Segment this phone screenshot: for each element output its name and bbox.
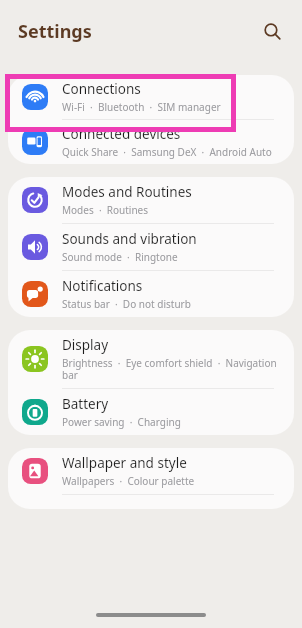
button[interactable]: Battery <box>8 389 294 435</box>
button[interactable]: Search <box>256 15 288 47</box>
staticText: Modes · Routines <box>62 203 149 217</box>
button[interactable]: Sounds and vibration <box>8 224 294 270</box>
staticText: Settings <box>18 19 92 44</box>
staticText: Display <box>62 336 109 354</box>
button[interactable]: Modes and Routines <box>8 177 294 223</box>
button[interactable]: Display <box>8 330 294 388</box>
staticText: Connected devices <box>62 125 181 143</box>
staticText: Connections <box>62 80 141 98</box>
staticText: Sounds and vibration <box>62 230 197 248</box>
button[interactable]: Connected devices <box>8 120 294 164</box>
staticText: Wallpapers · Colour palette <box>62 474 195 488</box>
staticText: Power saving · Charging <box>62 415 181 429</box>
staticText: Brightness · Eye comfort shield · Naviga… <box>62 356 282 382</box>
staticText: Modes and Routines <box>62 183 192 201</box>
button[interactable]: Wallpaper and style <box>8 448 294 494</box>
staticText: Wi-Fi · Bluetooth · SIM manager <box>62 100 221 114</box>
staticText: Quick Share · Samsung DeX · Android Auto <box>62 145 272 159</box>
staticText: Wallpaper and style <box>62 454 187 472</box>
button[interactable]: Notifications <box>8 271 294 317</box>
staticText: Status bar · Do not disturb <box>62 297 191 311</box>
staticText: Sound mode · Ringtone <box>62 250 178 264</box>
staticText: Battery <box>62 395 109 413</box>
button[interactable]: Connections <box>8 75 294 119</box>
staticText: Notifications <box>62 277 143 295</box>
